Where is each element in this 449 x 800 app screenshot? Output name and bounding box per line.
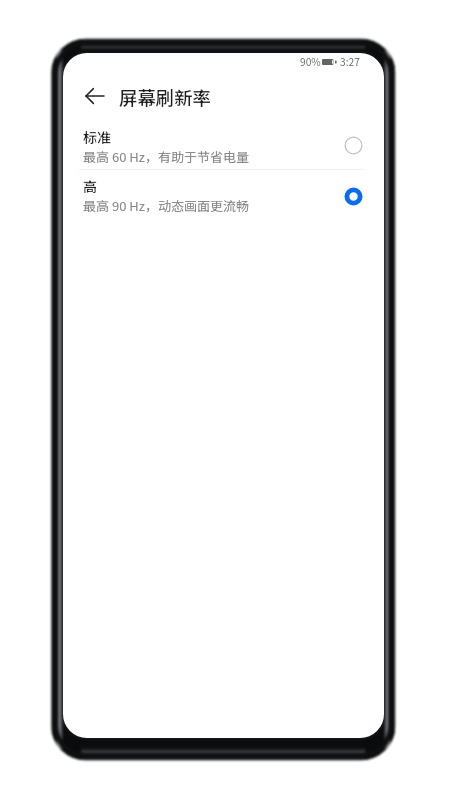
staticText: 3:27 [340,54,360,69]
button[interactable]: 标准 [63,117,384,167]
staticText: 最高 60 Hz，有助于节省电量 [83,147,249,166]
staticText: 屏幕刷新率 [119,84,211,111]
staticText: 标准 [83,127,111,147]
button[interactable]: 高 [63,166,384,216]
staticText: 90% [300,54,321,69]
staticText: 最高 90 Hz，动态画面更流畅 [83,196,249,215]
button[interactable]: Back [77,78,113,114]
staticText: 高 [83,176,97,196]
